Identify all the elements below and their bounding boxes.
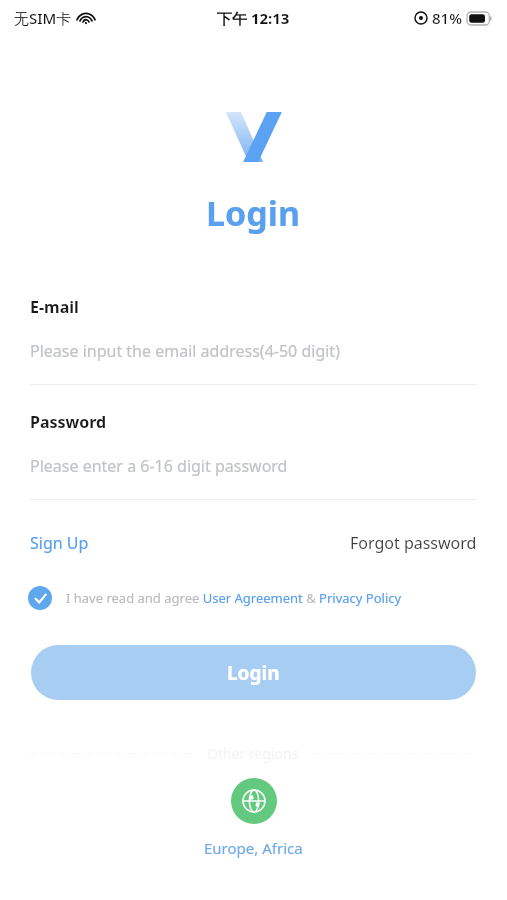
staticText: 81% <box>432 8 462 28</box>
staticText: Other regions <box>207 744 299 763</box>
staticText: Login <box>227 660 280 686</box>
staticText: 下午 12:13 <box>217 8 290 28</box>
staticText: I have read and agree User Agreement & P… <box>66 589 402 607</box>
button[interactable]: Select region <box>231 778 277 824</box>
staticText: Password <box>30 411 107 433</box>
staticText: 无SIM卡 <box>14 8 72 28</box>
other: Agree to terms <box>28 586 52 610</box>
staticText: Sign Up <box>30 532 89 554</box>
staticText: Please enter a 6-16 digit password <box>30 455 288 477</box>
staticText: Forgot password <box>350 532 477 554</box>
button[interactable]: Europe, Africa <box>204 838 303 858</box>
staticText: Please input the email address(4-50 digi… <box>30 340 340 362</box>
staticText: Login <box>206 190 301 236</box>
button[interactable]: Agree to terms <box>28 586 479 610</box>
button[interactable]: Sign Up <box>30 528 89 558</box>
button[interactable]: Login <box>31 645 476 700</box>
staticText: E-mail <box>30 296 79 318</box>
staticText: Europe, Africa <box>204 838 303 858</box>
button[interactable]: Please input the email address(4-50 digi… <box>30 340 477 362</box>
button[interactable]: Please enter a 6-16 digit password <box>30 455 477 477</box>
button[interactable]: Forgot password <box>350 528 477 558</box>
